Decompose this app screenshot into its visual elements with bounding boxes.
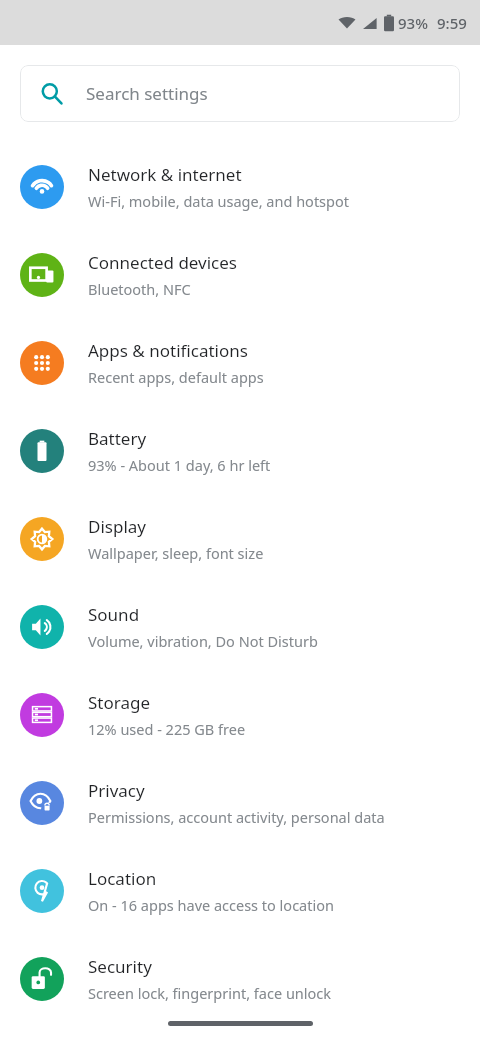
staticText: On - 16 apps have access to location [88,895,334,915]
staticText: Security [88,955,152,978]
staticText: Search settings [86,82,208,105]
staticText: Location [88,867,157,890]
other: Battery [384,14,394,32]
button[interactable]: Display [0,495,480,583]
button[interactable]: Network & internet [0,143,480,231]
button[interactable]: Privacy [0,759,480,847]
staticText: Screen lock, fingerprint, face unlock [88,983,332,1003]
button[interactable]: Sound [0,583,480,671]
button[interactable]: Search settings [20,65,460,122]
staticText: Bluetooth, NFC [88,279,191,299]
staticText: 93% [398,13,428,33]
staticText: Network & internet [88,163,242,186]
other: Signal [361,15,378,32]
staticText: Apps & notifications [88,339,248,362]
staticText: Sound [88,603,140,626]
button[interactable]: Connected devices [0,231,480,319]
button[interactable]: Apps & notifications [0,319,480,407]
button[interactable]: Storage [0,671,480,759]
staticText: Battery [88,427,147,450]
staticText: 93% - About 1 day, 6 hr left [88,455,271,475]
other: Wi-Fi [338,14,356,32]
button[interactable]: Location [0,847,480,935]
staticText: Connected devices [88,251,238,274]
staticText: Wallpaper, sleep, font size [88,543,264,563]
staticText: Privacy [88,779,145,802]
staticText: Recent apps, default apps [88,367,264,387]
staticText: Storage [88,691,151,714]
staticText: 9:59 [437,13,467,33]
staticText: Volume, vibration, Do Not Disturb [88,631,318,651]
staticText: Permissions, account activity, personal … [88,807,385,827]
staticText: Display [88,515,146,538]
button[interactable]: Battery [0,407,480,495]
staticText: Wi-Fi, mobile, data usage, and hotspot [88,191,349,211]
staticText: 12% used - 225 GB free [88,719,246,739]
button[interactable]: Security [0,935,480,1023]
